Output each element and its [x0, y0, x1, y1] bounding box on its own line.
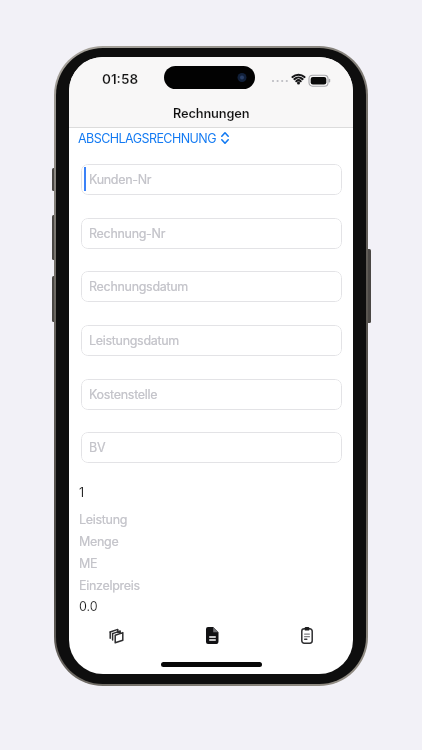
staticText: Menge	[79, 534, 119, 549]
button[interactable]: Leistungsdatum	[81, 325, 342, 356]
staticText: Rechnungen	[173, 106, 250, 121]
staticText: Kostenstelle	[89, 387, 158, 402]
staticText: ABSCHLAGSRECHNUNG	[78, 131, 216, 146]
button[interactable]	[95, 615, 139, 655]
staticText: BV	[89, 440, 106, 455]
staticText: 0.0	[79, 599, 98, 614]
button[interactable]: BV	[81, 432, 342, 463]
staticText: Kunden-Nr	[89, 172, 152, 187]
staticText: Leistungsdatum	[89, 333, 180, 348]
staticText: Leistung	[79, 512, 128, 527]
staticText: ME	[79, 556, 98, 571]
staticText: 01:58	[102, 71, 139, 87]
button[interactable]: Rechnung-Nr	[81, 218, 342, 249]
button[interactable]: Kunden-Nr	[81, 164, 342, 195]
button[interactable]: Rechnungsdatum	[81, 271, 342, 302]
button[interactable]	[285, 615, 329, 655]
button[interactable]	[190, 615, 234, 655]
button[interactable]: Kostenstelle	[81, 379, 342, 410]
staticText: Rechnungsdatum	[89, 279, 189, 294]
staticText: 1	[79, 485, 85, 500]
staticText: Einzelpreis	[79, 578, 140, 593]
button[interactable]: ABSCHLAGSRECHNUNG	[78, 129, 229, 147]
staticText: Rechnung-Nr	[89, 226, 166, 241]
